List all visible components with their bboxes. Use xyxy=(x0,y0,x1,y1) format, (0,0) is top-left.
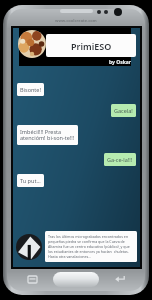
staticText: www.coolcreate.com xyxy=(55,18,97,23)
button[interactable]: Bisonte! xyxy=(17,83,44,96)
button[interactable]: Tu put... xyxy=(17,174,44,187)
staticText: PrimiESO xyxy=(71,40,112,52)
button[interactable]: Back xyxy=(99,270,141,288)
button[interactable]: Article image xyxy=(16,234,42,260)
staticText: Gacela! xyxy=(114,107,133,114)
button[interactable]: Tras los últimos micrograbados encontrad… xyxy=(45,231,137,262)
button[interactable]: Imbécil!!! Presta atencióm! bi-son-te!!! xyxy=(17,125,78,145)
button[interactable]: Profile photo xyxy=(18,30,46,58)
staticText: Tras los últimos micrograbados encontrad… xyxy=(48,234,134,259)
button[interactable]: Menu xyxy=(11,270,53,288)
staticText: Imbécil!!! Presta atencióm! bi-son-te!!! xyxy=(20,128,75,142)
button[interactable]: Gacela! xyxy=(111,104,136,117)
staticText: Bisonte! xyxy=(20,86,41,93)
button[interactable]: Home xyxy=(53,272,99,287)
button[interactable]: Ga-ce-la!!! xyxy=(104,153,136,166)
staticText: Tu put... xyxy=(20,177,41,184)
staticText: by Oskar xyxy=(109,59,132,66)
button[interactable]: PrimiESO xyxy=(46,34,136,57)
staticText: Ga-ce-la!!! xyxy=(107,156,133,163)
